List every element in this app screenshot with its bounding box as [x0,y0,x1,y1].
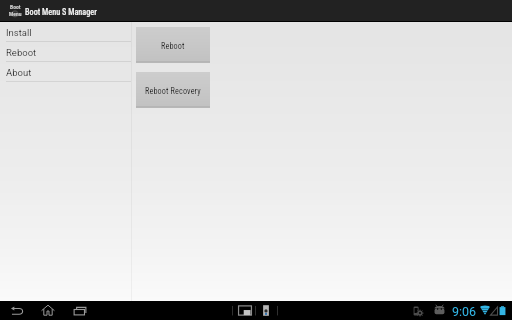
staticText: 9:06 [452,304,477,319]
button[interactable]: Install [0,22,131,42]
staticText: Install [6,27,32,38]
button[interactable]: Back [10,301,24,320]
button[interactable]: Reboot [0,42,131,62]
button[interactable]: Home [41,301,55,320]
button[interactable]: Screenshot [238,301,252,320]
staticText: Reboot [161,41,185,51]
staticText: Reboot Recovery [145,86,201,96]
button[interactable]: Reboot [136,27,210,63]
button[interactable]: Reboot Recovery [136,72,210,108]
staticText: Menu [9,11,22,18]
staticText: Boot [10,4,21,11]
staticText: Reboot [6,47,37,58]
button[interactable]: Recent apps [73,301,87,320]
button[interactable]: About [0,62,131,82]
staticText: Boot Menu S Manager [25,7,97,17]
staticText: About [6,67,32,78]
